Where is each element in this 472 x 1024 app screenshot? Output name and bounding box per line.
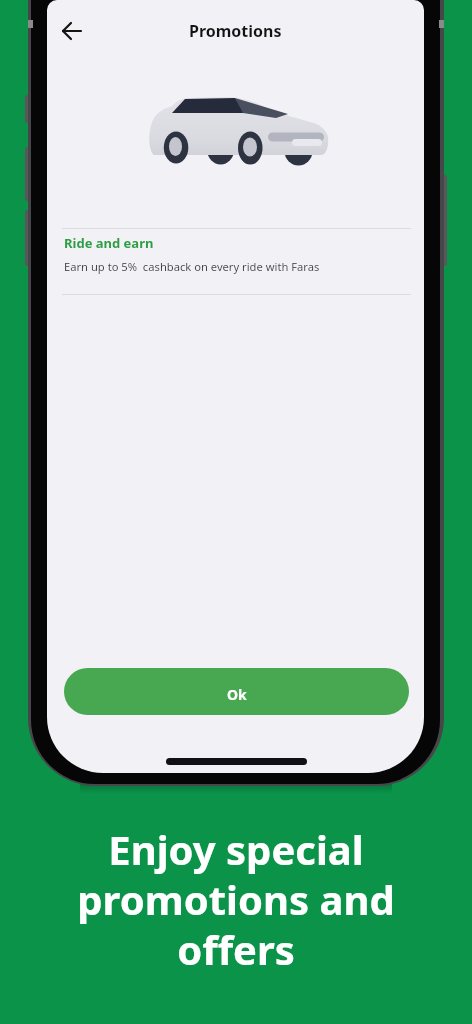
- staticText: Ride and earn: [64, 234, 154, 252]
- staticText: Enjoy special promotions and offers: [0, 822, 472, 977]
- button[interactable]: [51, 10, 93, 52]
- button[interactable]: Ok: [64, 668, 409, 715]
- staticText: Ok: [227, 685, 247, 704]
- staticText: Earn up to 5% cashback on every ride wit…: [64, 259, 320, 274]
- staticText: Promotions: [189, 20, 282, 42]
